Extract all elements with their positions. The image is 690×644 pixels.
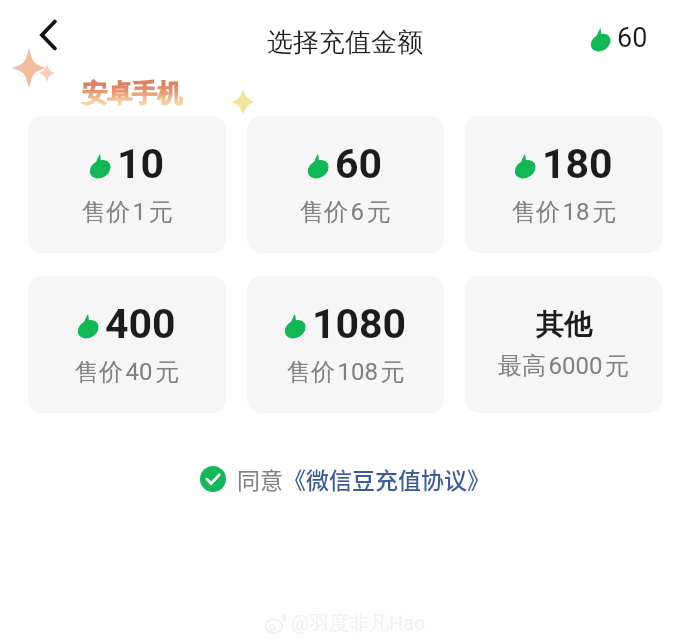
staticText: 1080 xyxy=(312,300,407,348)
staticText: 10 xyxy=(117,140,165,188)
staticText: 选择充值金额 xyxy=(267,26,423,59)
staticText: 售价 40 元 xyxy=(75,357,179,387)
button[interactable]: 60 xyxy=(247,116,444,253)
staticText: 同意《微信豆充值协议》 xyxy=(237,462,490,495)
staticText: 400 xyxy=(105,300,176,348)
staticText: 售价 6 元 xyxy=(300,197,391,227)
staticText: 60 xyxy=(617,22,648,54)
button[interactable]: 1080 xyxy=(247,276,444,413)
staticText: 售价 18 元 xyxy=(512,197,616,227)
button[interactable]: Back xyxy=(18,12,64,58)
staticText: 售价 108 元 xyxy=(287,357,405,387)
button[interactable]: 10 xyxy=(28,116,226,253)
button[interactable]: 同意《微信豆充值协议》 xyxy=(200,462,490,495)
staticText: 最高 6000 元 xyxy=(498,351,629,381)
button[interactable]: 180 xyxy=(465,116,662,253)
staticText: 售价 1 元 xyxy=(82,197,173,227)
staticText: 安卓手机 xyxy=(82,78,182,109)
staticText: @羽度非凡Hao xyxy=(291,611,426,636)
button[interactable]: 其他 xyxy=(465,276,662,413)
staticText: 60 xyxy=(335,140,383,188)
button[interactable]: 60 xyxy=(591,22,648,54)
staticText: 180 xyxy=(542,140,613,188)
button[interactable]: 400 xyxy=(28,276,226,413)
staticText: 其他 xyxy=(536,307,592,342)
